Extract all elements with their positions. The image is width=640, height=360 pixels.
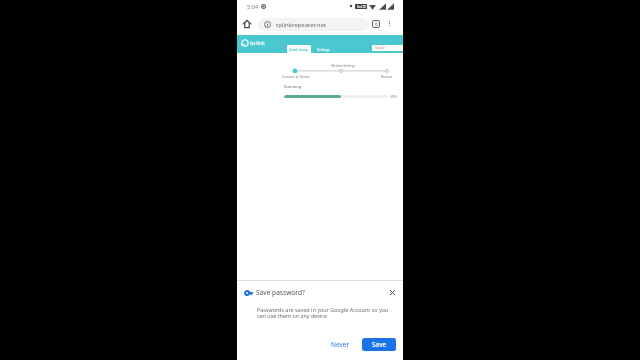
staticText: Wireless Settings (331, 64, 355, 68)
button[interactable]: tplinkrepeater.net (258, 18, 369, 31)
staticText: Scanning (284, 84, 302, 89)
staticText: Connect to Router (282, 74, 311, 78)
staticText: Never (331, 340, 350, 349)
button[interactable]: Never (325, 338, 356, 351)
staticText: Save password? (256, 288, 305, 297)
staticText: Search (375, 46, 386, 50)
button[interactable]: Search (372, 45, 403, 51)
staticText: 5:04 (247, 3, 259, 11)
staticText: VoLTE (357, 5, 366, 9)
staticText: Quick Setup (289, 47, 309, 52)
button[interactable]: Settings (314, 45, 332, 53)
staticText: tp-link (250, 40, 265, 46)
button[interactable]: Quick Setup (287, 45, 311, 53)
staticText: 6 (375, 21, 378, 28)
button[interactable]: Home (240, 17, 254, 31)
staticText: Save (372, 340, 387, 349)
button[interactable]: More options (384, 18, 395, 29)
staticText: tplinkrepeater.net (276, 21, 326, 29)
button[interactable]: Switch tabs (369, 17, 383, 31)
button[interactable]: Save (362, 338, 396, 351)
staticText: Settings (317, 47, 330, 52)
staticText: Passwords are saved in your Google Accou… (257, 306, 390, 320)
staticText: 55% (390, 94, 397, 99)
button[interactable]: Close (386, 286, 399, 299)
staticText: Review (381, 74, 392, 78)
